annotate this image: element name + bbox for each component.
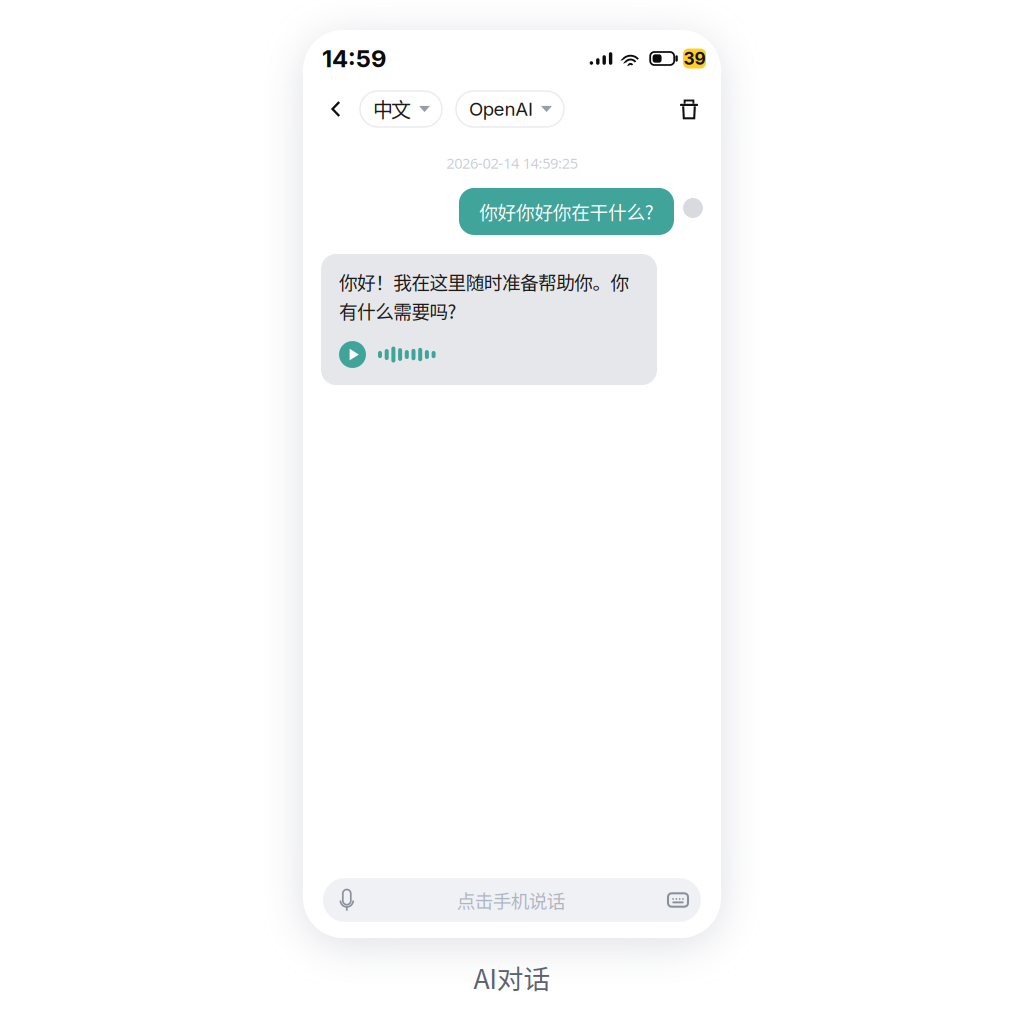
- button[interactable]: Back: [324, 89, 348, 129]
- staticText: 2026-02-14 14:59:25: [446, 153, 578, 173]
- staticText: 39: [683, 48, 705, 69]
- button[interactable]: 中文: [360, 91, 442, 127]
- button[interactable]: OpenAI: [456, 91, 564, 127]
- staticText: OpenAI: [469, 98, 533, 120]
- staticText: 中文: [373, 94, 411, 123]
- button[interactable]: 点击手机说话: [323, 878, 701, 922]
- button[interactable]: Delete conversation: [675, 91, 703, 127]
- staticText: AI对话: [473, 958, 550, 997]
- staticText: 14:59: [322, 44, 386, 73]
- staticText: 有什么需要吗?: [339, 297, 457, 324]
- staticText: 你好！我在这里随时准备帮助你。你: [339, 268, 629, 295]
- staticText: 点击手机说话: [457, 886, 566, 913]
- staticText: 你好你好你在干什么?: [479, 198, 654, 225]
